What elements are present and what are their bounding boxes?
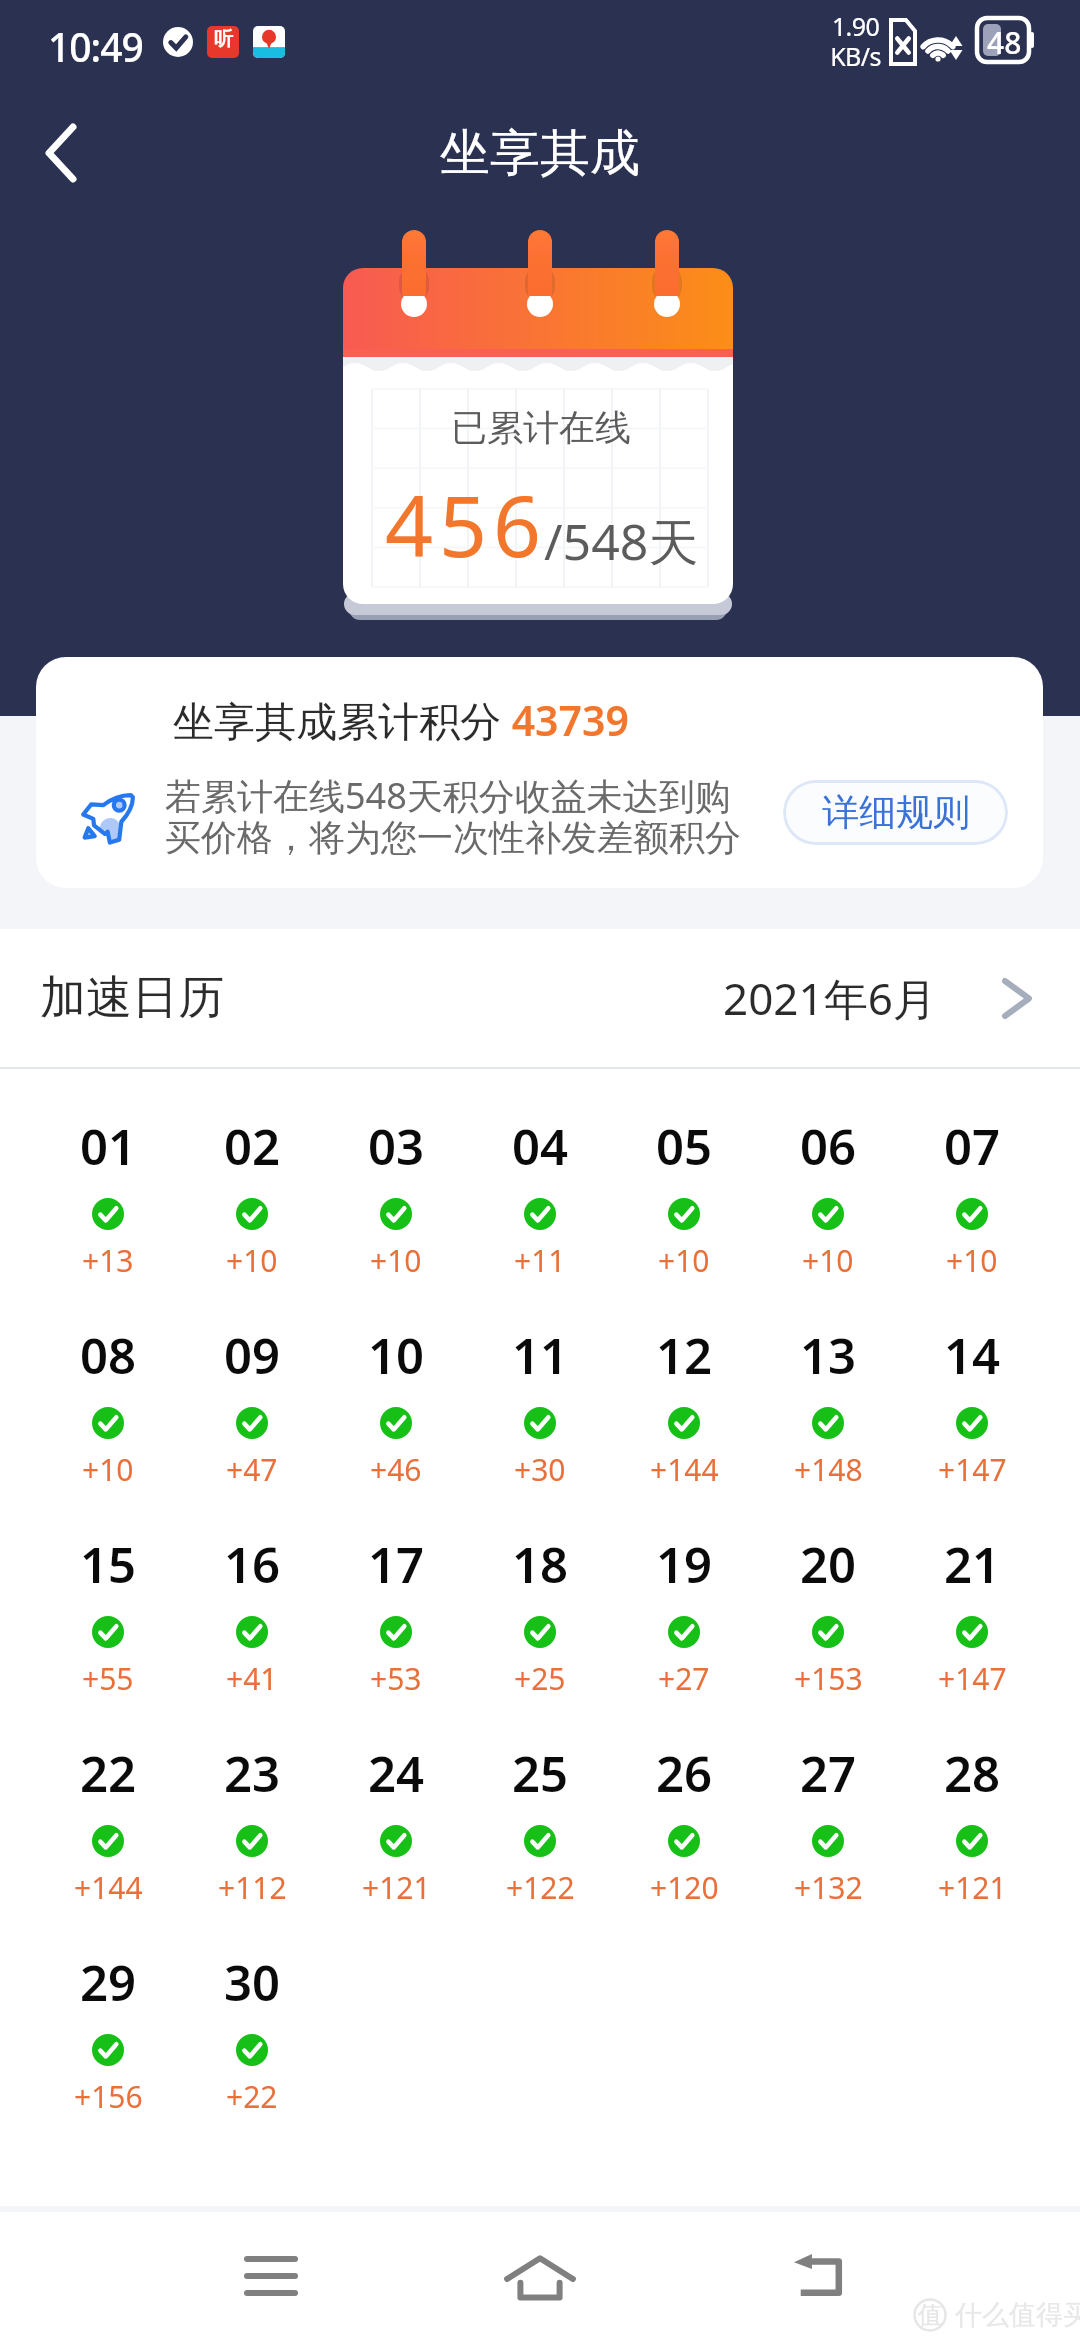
button[interactable]: 09: [180, 1322, 324, 1490]
button[interactable]: 05: [612, 1113, 756, 1281]
button[interactable]: 16: [180, 1531, 324, 1699]
staticText: +46: [370, 1449, 422, 1490]
button[interactable]: 17: [324, 1531, 468, 1699]
staticText: 07: [944, 1113, 1001, 1180]
staticText: 加速日历: [40, 969, 224, 1027]
button[interactable]: 08: [36, 1322, 180, 1490]
button[interactable]: Back: [752, 2212, 892, 2340]
button[interactable]: 25: [468, 1740, 612, 1908]
staticText: 05: [656, 1113, 713, 1180]
staticText: 10:49: [48, 20, 143, 73]
staticText: 1.90 KB/s: [830, 9, 881, 74]
staticText: +22: [226, 2076, 278, 2117]
staticText: 25: [512, 1740, 569, 1807]
button[interactable]: 02: [180, 1113, 324, 1281]
staticText: 21: [944, 1531, 1001, 1598]
staticText: 坐享其成累计积分 43739: [173, 692, 629, 748]
staticText: +25: [514, 1658, 566, 1699]
staticText: 10: [368, 1322, 425, 1389]
staticText: 2021年6月: [723, 968, 937, 1028]
staticText: 01: [80, 1113, 137, 1180]
staticText: 17: [368, 1531, 425, 1598]
staticText: 456: [385, 467, 548, 581]
staticText: 18: [512, 1531, 569, 1598]
staticText: +41: [226, 1658, 278, 1699]
staticText: 23: [224, 1740, 281, 1807]
button[interactable]: 20: [756, 1531, 900, 1699]
staticText: +47: [226, 1449, 278, 1490]
staticText: 坐享其成: [440, 122, 640, 185]
staticText: +147: [938, 1449, 1007, 1490]
button[interactable]: 29: [36, 1949, 180, 2117]
staticText: +55: [82, 1658, 134, 1699]
staticText: +10: [370, 1240, 422, 1281]
button[interactable]: 11: [468, 1322, 612, 1490]
staticText: 14: [944, 1322, 1001, 1389]
staticText: 09: [224, 1322, 281, 1389]
staticText: 15: [80, 1531, 137, 1598]
button[interactable]: Recent apps: [201, 2212, 341, 2340]
staticText: +10: [82, 1449, 134, 1490]
button[interactable]: 01: [36, 1113, 180, 1281]
staticText: 若累计在线548天积分收益未达到购 买价格，将为您一次性补发差额积分: [165, 771, 741, 861]
staticText: +148: [794, 1449, 863, 1490]
button[interactable]: 10: [324, 1322, 468, 1490]
button[interactable]: 12: [612, 1322, 756, 1490]
button[interactable]: 14: [900, 1322, 1044, 1490]
staticText: 什么值得买: [955, 2298, 1080, 2332]
button[interactable]: 07: [900, 1113, 1044, 1281]
button[interactable]: 18: [468, 1531, 612, 1699]
staticText: 04: [512, 1113, 569, 1180]
button[interactable]: 22: [36, 1740, 180, 1908]
staticText: +27: [658, 1658, 710, 1699]
button[interactable]: 21: [900, 1531, 1044, 1699]
staticText: +11: [514, 1240, 566, 1281]
button[interactable]: 26: [612, 1740, 756, 1908]
button[interactable]: 06: [756, 1113, 900, 1281]
staticText: 03: [368, 1113, 425, 1180]
staticText: 22: [80, 1740, 137, 1807]
staticText: +10: [802, 1240, 854, 1281]
button[interactable]: 详细规则: [783, 780, 1008, 845]
staticText: +10: [226, 1240, 278, 1281]
staticText: +153: [794, 1658, 863, 1699]
button[interactable]: 13: [756, 1322, 900, 1490]
staticText: +144: [650, 1449, 719, 1490]
button[interactable]: Back: [0, 97, 112, 209]
button[interactable]: 28: [900, 1740, 1044, 1908]
staticText: 06: [800, 1113, 857, 1180]
button[interactable]: 加速日历: [0, 929, 1080, 1067]
button[interactable]: 15: [36, 1531, 180, 1699]
staticText: +132: [794, 1867, 863, 1908]
staticText: +10: [658, 1240, 710, 1281]
staticText: 02: [224, 1113, 281, 1180]
staticText: +30: [514, 1449, 566, 1490]
button[interactable]: 03: [324, 1113, 468, 1281]
staticText: +112: [218, 1867, 287, 1908]
button[interactable]: 30: [180, 1949, 324, 2117]
staticText: 24: [368, 1740, 425, 1807]
staticText: 详细规则: [822, 789, 970, 836]
staticText: 11: [512, 1322, 569, 1389]
staticText: 27: [800, 1740, 857, 1807]
staticText: +147: [938, 1658, 1007, 1699]
staticText: +144: [74, 1867, 143, 1908]
button[interactable]: 04: [468, 1113, 612, 1281]
staticText: +121: [362, 1867, 431, 1908]
staticText: 20: [800, 1531, 857, 1598]
staticText: +13: [82, 1240, 134, 1281]
staticText: 已累计在线: [451, 405, 631, 450]
staticText: 值: [918, 2300, 942, 2330]
button[interactable]: 19: [612, 1531, 756, 1699]
staticText: +121: [938, 1867, 1007, 1908]
staticText: 听: [214, 27, 233, 51]
button[interactable]: 23: [180, 1740, 324, 1908]
staticText: 29: [80, 1949, 137, 2016]
button[interactable]: 24: [324, 1740, 468, 1908]
button[interactable]: 27: [756, 1740, 900, 1908]
button[interactable]: Home: [470, 2212, 610, 2340]
staticText: 16: [224, 1531, 281, 1598]
staticText: 13: [800, 1322, 857, 1389]
staticText: 19: [656, 1531, 713, 1598]
staticText: 12: [656, 1322, 713, 1389]
